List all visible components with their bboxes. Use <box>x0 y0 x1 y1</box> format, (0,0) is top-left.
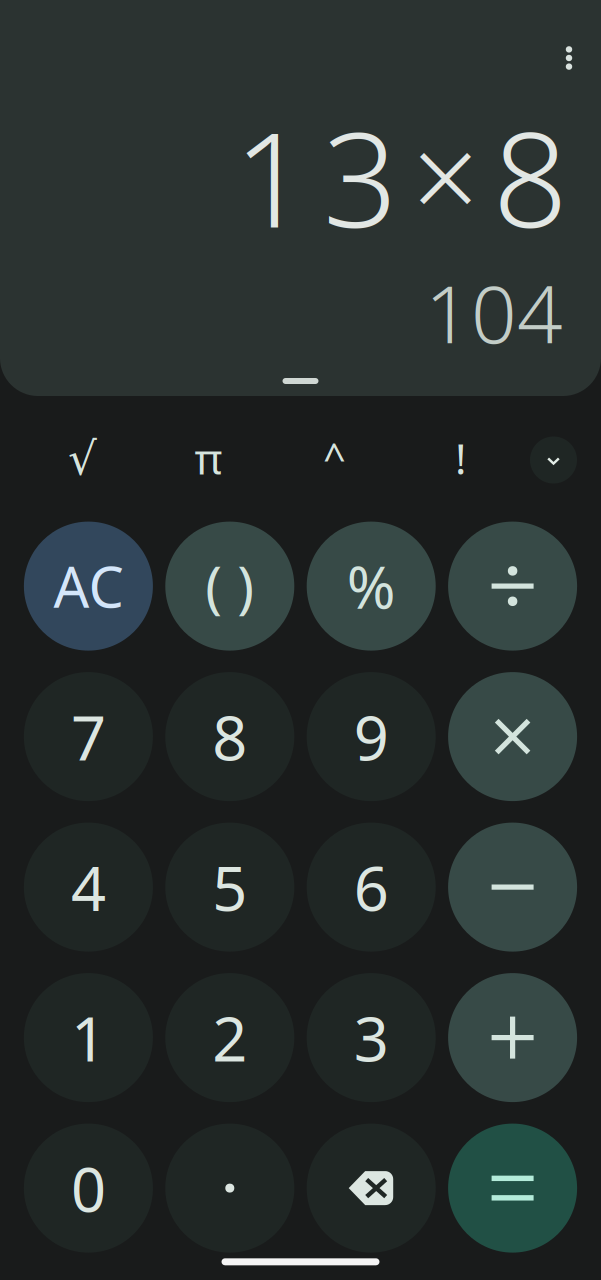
button[interactable]: 4 <box>24 823 153 952</box>
staticText: 1 <box>234 90 309 263</box>
staticText: 5 <box>212 846 247 928</box>
staticText: 9 <box>354 696 389 777</box>
button[interactable]: 6 <box>307 823 436 952</box>
staticText: 0 <box>71 1147 106 1229</box>
button[interactable]: 9 <box>307 672 436 801</box>
staticText: 7 <box>71 696 106 777</box>
staticText: 3 <box>354 997 389 1078</box>
button[interactable]: 3 <box>307 973 436 1102</box>
staticText: ^ <box>323 430 346 483</box>
button[interactable]: ( ) <box>165 522 294 651</box>
button[interactable]: Backspace <box>307 1124 436 1253</box>
button[interactable]: 2 <box>165 973 294 1102</box>
staticText: AC <box>53 549 123 623</box>
staticText: % <box>347 547 396 625</box>
staticText: 104 <box>425 259 563 365</box>
staticText: 8 <box>493 90 568 263</box>
button[interactable]: ^ <box>271 430 397 490</box>
staticText: 3 <box>323 90 398 263</box>
staticText: × <box>412 97 479 253</box>
button[interactable]: More functions <box>523 430 583 490</box>
button[interactable]: Minus <box>448 823 577 952</box>
staticText: √ <box>68 433 97 485</box>
button[interactable]: Divide <box>448 522 577 651</box>
button[interactable]: Plus <box>448 973 577 1102</box>
staticText: π <box>194 430 222 486</box>
button[interactable]: AC <box>24 522 153 651</box>
button[interactable]: Multiply <box>448 672 577 801</box>
staticText: 6 <box>354 846 389 928</box>
button[interactable]: Equals <box>448 1124 577 1253</box>
button[interactable]: 7 <box>24 672 153 801</box>
button[interactable]: 8 <box>165 672 294 801</box>
button[interactable]: ! <box>397 430 523 490</box>
button[interactable]: More options <box>547 36 591 80</box>
button[interactable]: 1 <box>24 973 153 1102</box>
staticText: 4 <box>71 846 106 928</box>
staticText: 2 <box>212 997 247 1078</box>
button[interactable]: % <box>307 522 436 651</box>
staticText: 8 <box>212 696 247 777</box>
button[interactable]: Decimal point <box>165 1124 294 1253</box>
button[interactable]: √ <box>19 430 145 490</box>
staticText: 1 <box>71 997 106 1078</box>
staticText: ! <box>455 430 466 486</box>
staticText: ( ) <box>205 549 254 623</box>
button[interactable]: 0 <box>24 1124 153 1253</box>
button[interactable]: π <box>145 430 271 490</box>
button[interactable]: 5 <box>165 823 294 952</box>
